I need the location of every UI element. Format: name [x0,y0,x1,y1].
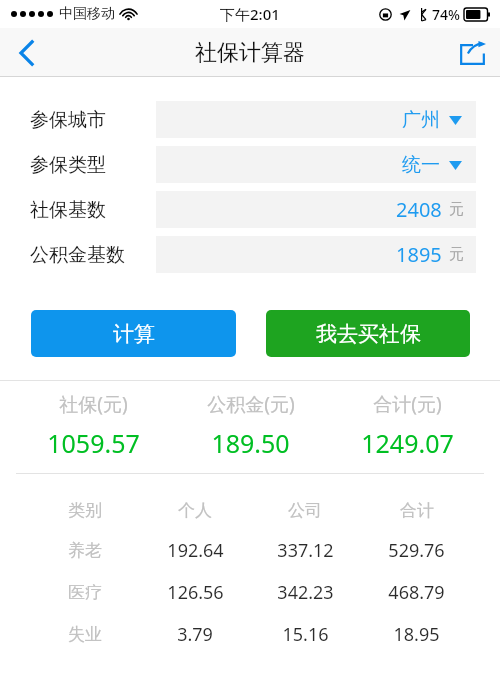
staticText: 337.12 [277,538,334,563]
staticText: 189.50 [211,426,290,460]
staticText: 3.79 [177,622,213,647]
staticText: 2408 [396,196,442,223]
staticText: 计算 [113,321,155,347]
button[interactable]: 2408 [156,191,476,228]
staticText: 个人 [178,500,212,521]
staticText: 1059.57 [47,426,140,460]
staticText: 合计 [400,500,434,521]
staticText: 18.95 [393,622,440,647]
staticText: 公积金基数 [30,243,125,267]
button[interactable]: 计算 [31,310,236,357]
staticText: 失业 [68,624,102,645]
staticText: 中国移动 [59,5,115,23]
button[interactable]: Share [444,28,500,77]
staticText: 类别 [68,500,102,521]
staticText: 1895 [396,241,442,268]
button[interactable]: 统一 [156,146,476,183]
staticText: 社保(元) [59,391,128,417]
staticText: 公司 [288,500,322,521]
button[interactable]: 1895 [156,236,476,273]
staticText: 我去买社保 [316,321,421,347]
button[interactable]: Back [0,28,54,77]
staticText: 统一 [402,153,440,177]
staticText: 合计(元) [373,391,442,417]
staticText: 15.16 [282,622,329,647]
staticText: 医疗 [68,582,102,603]
staticText: 公积金(元) [207,391,295,417]
staticText: 元 [449,200,464,219]
button[interactable]: 广州 [156,101,476,138]
staticText: 1249.07 [361,426,454,460]
staticText: 元 [449,245,464,264]
staticText: 下午2:01 [220,4,280,24]
staticText: 广州 [402,108,440,132]
button[interactable]: 我去买社保 [266,310,470,357]
staticText: 192.64 [167,538,224,563]
staticText: 529.76 [388,538,445,563]
staticText: 参保类型 [30,153,106,177]
staticText: 参保城市 [30,108,106,132]
staticText: 社保基数 [30,198,106,222]
staticText: 养老 [68,540,102,561]
staticText: 74% [432,5,460,24]
staticText: 468.79 [388,580,445,605]
staticText: 342.23 [277,580,334,605]
staticText: 社保计算器 [195,39,305,67]
staticText: 126.56 [167,580,224,605]
